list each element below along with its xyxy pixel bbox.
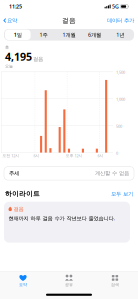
- staticText: 6개월: [88, 31, 101, 38]
- staticText: 계산할 수 없음: [95, 170, 129, 177]
- button[interactable]: 검색: [92, 271, 138, 290]
- staticText: 데이터 추가: [107, 17, 134, 24]
- staticText: 1,500: [116, 70, 125, 75]
- staticText: 공유: [65, 282, 73, 287]
- staticText: 1일: [14, 31, 22, 38]
- button[interactable]: 1개월: [56, 29, 82, 41]
- staticText: 4,195: [5, 49, 32, 64]
- button[interactable]: 1일: [5, 29, 31, 41]
- staticText: 오늘: [5, 64, 13, 69]
- staticText: 걸음: [33, 56, 43, 62]
- staticText: 6시: [97, 153, 103, 158]
- button[interactable]: 추세: [4, 167, 134, 180]
- staticText: 오후 12시: [65, 153, 82, 158]
- staticText: 하이라이트: [5, 190, 40, 198]
- button[interactable]: 1년: [107, 29, 133, 41]
- staticText: 걸음: [13, 206, 23, 212]
- staticText: 6시: [33, 153, 39, 158]
- staticText: 오전 12시: [2, 153, 19, 158]
- button[interactable]: 1주: [31, 29, 56, 41]
- staticText: 검색: [111, 282, 119, 287]
- button[interactable]: 요약: [0, 15, 17, 26]
- button[interactable]: 걸음: [4, 202, 130, 243]
- staticText: 모두 보기: [111, 191, 133, 197]
- staticText: 500: [116, 124, 122, 129]
- staticText: 1개월: [62, 31, 75, 38]
- staticText: 5G: [112, 3, 119, 10]
- staticText: 걸음: [62, 16, 76, 25]
- staticText: 0: [116, 151, 118, 156]
- staticText: 추세: [9, 170, 19, 177]
- staticText: 1년: [116, 31, 124, 38]
- staticText: 요약: [19, 282, 27, 287]
- staticText: 1주: [39, 31, 47, 38]
- staticText: 총: [5, 45, 9, 49]
- button[interactable]: 데이터 추가: [107, 15, 138, 26]
- button[interactable]: 6개월: [82, 29, 107, 41]
- button[interactable]: 요약: [0, 271, 46, 290]
- staticText: 11:25: [9, 3, 22, 10]
- staticText: 현재까지 하루 걸음 수가 작년보다 줄었습니다.: [8, 215, 114, 222]
- button[interactable]: 모두 보기: [111, 189, 133, 199]
- staticText: 요약: [7, 17, 17, 24]
- button[interactable]: 공유: [46, 271, 92, 290]
- staticText: 1,000: [116, 97, 125, 102]
